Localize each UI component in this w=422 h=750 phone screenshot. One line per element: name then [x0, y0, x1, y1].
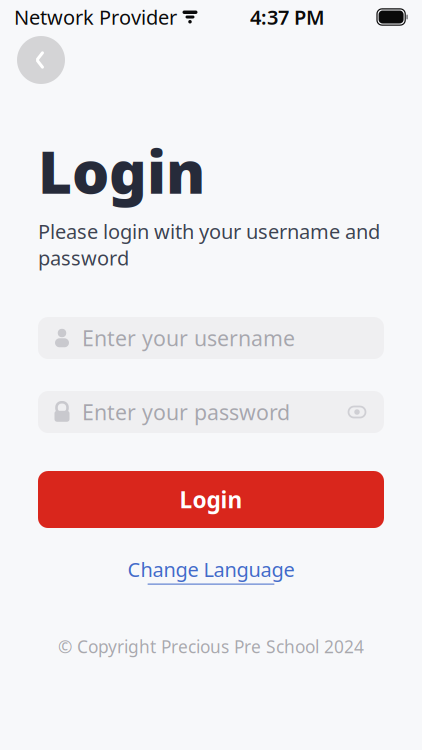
- staticText: Please login with your username and pass…: [38, 218, 380, 271]
- staticText: Enter your username: [82, 324, 295, 352]
- staticText: Login: [179, 484, 242, 515]
- staticText: Network Provider: [14, 4, 177, 30]
- button[interactable]: Login: [38, 471, 384, 528]
- button[interactable]: Show password: [346, 401, 368, 423]
- button[interactable]: Back: [17, 36, 65, 84]
- staticText: Enter your password: [82, 398, 290, 426]
- staticText: © Copyright Precious Pre School 2024: [58, 635, 364, 658]
- staticText: Change Language: [127, 556, 294, 583]
- staticText: Login: [38, 132, 205, 210]
- staticText: 4:37 PM: [250, 4, 325, 30]
- button[interactable]: Change Language: [127, 556, 294, 585]
